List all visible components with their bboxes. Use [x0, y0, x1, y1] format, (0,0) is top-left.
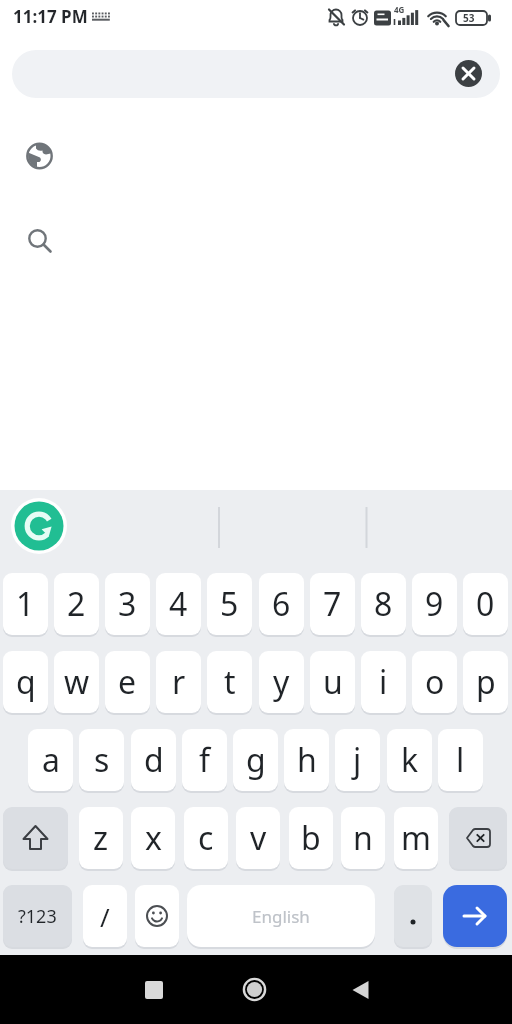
- staticText: English: [252, 905, 310, 928]
- staticText: d: [144, 738, 164, 782]
- button[interactable]: m: [394, 807, 438, 869]
- staticText: q: [16, 660, 36, 704]
- button[interactable]: [3, 807, 68, 869]
- button[interactable]: e: [105, 651, 150, 713]
- button[interactable]: [455, 60, 482, 87]
- button[interactable]: 2: [54, 573, 99, 635]
- staticText: e: [118, 660, 137, 704]
- button[interactable]: o: [412, 651, 457, 713]
- button[interactable]: [449, 807, 507, 869]
- button[interactable]: g: [233, 729, 278, 791]
- button[interactable]: n: [341, 807, 385, 869]
- button[interactable]: 8: [361, 573, 406, 635]
- staticText: 53: [463, 11, 475, 25]
- staticText: n: [353, 816, 373, 860]
- button[interactable]: 7: [310, 573, 355, 635]
- staticText: b: [301, 816, 321, 860]
- staticText: w: [64, 660, 90, 704]
- button[interactable]: v: [236, 807, 280, 869]
- button[interactable]: f: [182, 729, 227, 791]
- button[interactable]: [332, 970, 372, 1010]
- button[interactable]: English: [187, 885, 375, 947]
- staticText: h: [297, 738, 317, 782]
- button[interactable]: c: [184, 807, 228, 869]
- button[interactable]: 9: [412, 573, 457, 635]
- staticText: 2: [67, 582, 86, 626]
- staticText: 0: [476, 582, 495, 626]
- staticText: ?123: [18, 904, 57, 929]
- staticText: 4: [169, 582, 188, 626]
- staticText: 5: [220, 582, 239, 626]
- staticText: 7: [323, 582, 342, 626]
- button[interactable]: l: [438, 729, 483, 791]
- button[interactable]: p: [463, 651, 508, 713]
- staticText: t: [224, 660, 236, 704]
- staticText: 1: [16, 582, 35, 626]
- staticText: /: [100, 899, 110, 934]
- button[interactable]: 6: [259, 573, 304, 635]
- staticText: c: [198, 816, 214, 860]
- staticText: i: [379, 660, 388, 704]
- button[interactable]: k: [387, 729, 432, 791]
- button[interactable]: x: [131, 807, 175, 869]
- staticText: 6: [272, 582, 291, 626]
- button[interactable]: s: [79, 729, 124, 791]
- staticText: v: [250, 816, 267, 860]
- button[interactable]: [12, 50, 500, 98]
- staticText: 3: [118, 582, 137, 626]
- button[interactable]: y: [259, 651, 304, 713]
- staticText: a: [42, 738, 60, 782]
- staticText: l: [456, 738, 465, 782]
- button[interactable]: [20, 136, 60, 176]
- button[interactable]: /: [83, 885, 127, 947]
- button[interactable]: 3: [105, 573, 150, 635]
- button[interactable]: ?123: [3, 885, 72, 947]
- button[interactable]: r: [156, 651, 201, 713]
- button[interactable]: [443, 885, 507, 947]
- staticText: 9: [425, 582, 444, 626]
- button[interactable]: [394, 885, 432, 947]
- button[interactable]: i: [361, 651, 406, 713]
- button[interactable]: [234, 970, 274, 1010]
- staticText: f: [199, 738, 211, 782]
- button[interactable]: d: [131, 729, 176, 791]
- staticText: k: [401, 738, 419, 782]
- staticText: m: [401, 816, 431, 860]
- staticText: o: [425, 660, 445, 704]
- button[interactable]: z: [79, 807, 123, 869]
- button[interactable]: 0: [463, 573, 508, 635]
- staticText: x: [145, 816, 162, 860]
- button[interactable]: q: [3, 651, 48, 713]
- button[interactable]: h: [284, 729, 329, 791]
- staticText: s: [94, 738, 110, 782]
- staticText: y: [273, 660, 290, 704]
- button[interactable]: [134, 970, 174, 1010]
- button[interactable]: t: [207, 651, 252, 713]
- staticText: 4G: [394, 4, 405, 15]
- staticText: p: [476, 660, 496, 704]
- staticText: 8: [374, 582, 393, 626]
- button[interactable]: u: [310, 651, 355, 713]
- button[interactable]: a: [28, 729, 73, 791]
- button[interactable]: 1: [3, 573, 48, 635]
- button[interactable]: j: [335, 729, 380, 791]
- staticText: j: [353, 738, 362, 782]
- button[interactable]: [20, 222, 60, 262]
- staticText: u: [323, 660, 343, 704]
- button[interactable]: [11, 498, 67, 554]
- button[interactable]: 4: [156, 573, 201, 635]
- button[interactable]: [135, 885, 179, 947]
- button[interactable]: 5: [207, 573, 252, 635]
- staticText: g: [246, 738, 266, 782]
- staticText: z: [93, 816, 109, 860]
- button[interactable]: b: [289, 807, 333, 869]
- staticText: 11:17 PM: [13, 5, 88, 28]
- staticText: r: [172, 660, 186, 704]
- button[interactable]: w: [54, 651, 99, 713]
